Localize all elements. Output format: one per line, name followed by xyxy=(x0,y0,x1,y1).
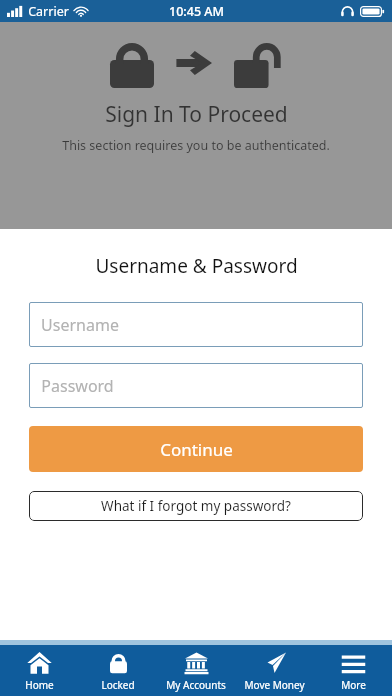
button[interactable]: Locked xyxy=(79,645,157,696)
staticText: Username & Password xyxy=(95,253,298,279)
button[interactable]: Password xyxy=(29,363,363,408)
button[interactable]: Home xyxy=(0,645,78,696)
staticText: Sign In To Proceed xyxy=(105,100,288,129)
button[interactable]: Move Money xyxy=(235,645,313,696)
staticText: Continue xyxy=(160,438,233,461)
staticText: Carrier xyxy=(28,3,69,20)
staticText: Move Money xyxy=(244,678,305,692)
button[interactable]: Continue xyxy=(29,426,363,472)
staticText: Home xyxy=(25,678,54,692)
staticText: More xyxy=(341,678,366,692)
staticText: Locked xyxy=(101,678,135,692)
staticText: What if I forgot my password? xyxy=(101,497,291,515)
button[interactable]: More xyxy=(314,645,392,696)
staticText: My Accounts xyxy=(166,678,226,692)
staticText: Username xyxy=(41,314,119,336)
staticText: Password xyxy=(41,375,114,397)
staticText: This section requires you to be authenti… xyxy=(62,137,330,154)
button[interactable]: My Accounts xyxy=(157,645,235,696)
button[interactable]: Username xyxy=(29,302,363,347)
button[interactable]: What if I forgot my password? xyxy=(29,491,363,521)
staticText: 10:45 AM xyxy=(169,3,224,20)
